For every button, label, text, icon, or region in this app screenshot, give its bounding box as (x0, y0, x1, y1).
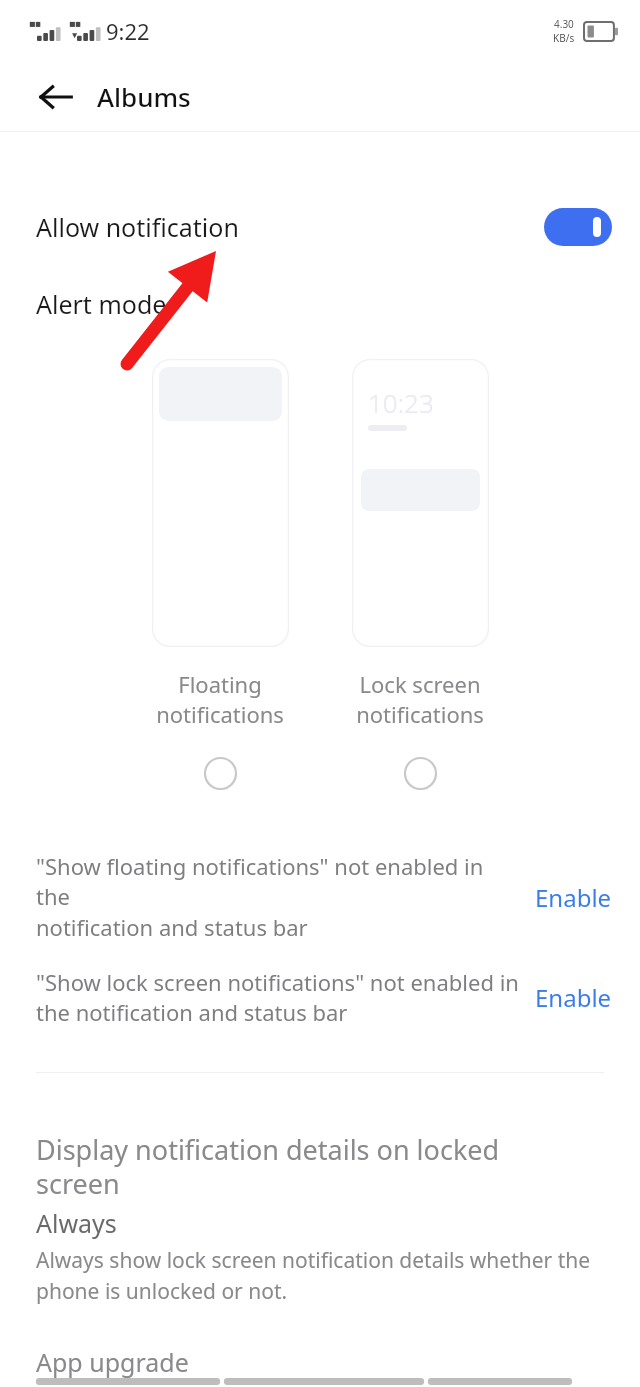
staticText: Enable (535, 981, 612, 1014)
staticText: 9:22 (106, 16, 150, 46)
staticText: App upgrade (36, 1345, 189, 1379)
staticText: Always (36, 1206, 117, 1240)
button[interactable]: Allow notification (0, 194, 640, 260)
button[interactable]: Allow notification toggle (544, 208, 612, 246)
staticText: Albums (97, 79, 191, 114)
staticText: Display notification details on locked s… (36, 1131, 500, 1202)
button[interactable]: 10:23 (320, 359, 520, 799)
button[interactable]: Select option (394, 747, 446, 799)
button[interactable]: "Show lock screen notifications" not ena… (0, 967, 640, 1028)
staticText: Always show lock screen notification det… (36, 1246, 591, 1305)
button[interactable]: Display notification details on locked s… (0, 1131, 640, 1305)
staticText: KB/s (553, 31, 575, 45)
button[interactable]: "Show floating notifications" not enable… (0, 851, 640, 943)
staticText: "Show floating notifications" not enable… (36, 851, 523, 943)
staticText: Floating notifications (156, 669, 284, 729)
button[interactable]: Back (28, 69, 84, 125)
staticText: Enable (535, 881, 612, 914)
button[interactable]: Floating notifications (120, 359, 320, 799)
staticText: 4.30 (554, 17, 574, 31)
staticText: 10:23 (368, 385, 434, 420)
staticText: Alert mode (36, 287, 167, 321)
staticText: Allow notification (36, 210, 239, 244)
staticText: Lock screen notifications (356, 669, 484, 729)
staticText: "Show lock screen notifications" not ena… (36, 967, 523, 1028)
button[interactable]: Select option (194, 747, 246, 799)
